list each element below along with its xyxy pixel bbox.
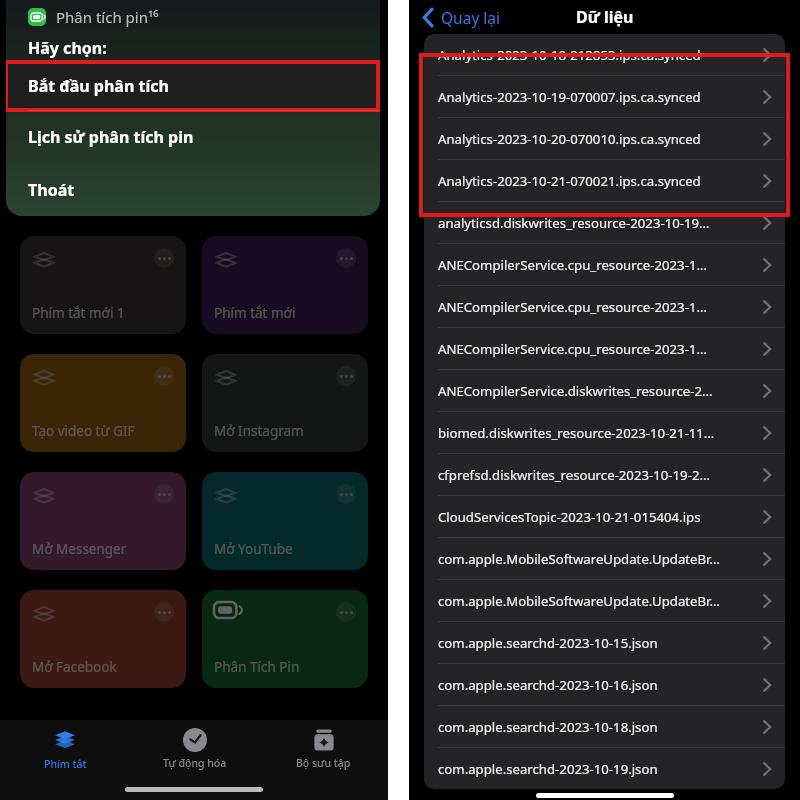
button[interactable]: Quay lại <box>423 7 501 28</box>
staticText: Mở Instagram <box>214 422 304 440</box>
staticText: com.apple.searchd-2023-10-16.json <box>438 676 658 694</box>
button[interactable]: com.apple.searchd-2023-10-16.json <box>424 663 785 705</box>
button[interactable]: More options <box>202 590 368 688</box>
staticText: ANECompilerService.diskwrites_resource-2… <box>438 382 713 400</box>
button[interactable]: Analytics-2023-10-20-070010.ips.ca.synce… <box>424 117 785 159</box>
button[interactable]: biomed.diskwrites_resource-2023-10-21-11… <box>424 411 785 453</box>
staticText: CloudServicesTopic-2023-10-21-015404.ips <box>438 508 701 526</box>
staticText: Phân Tích Pin <box>214 658 300 676</box>
button[interactable]: CloudServicesTopic-2023-10-21-015404.ips <box>424 495 785 537</box>
staticText: Bắt đầu phân tích <box>28 75 169 97</box>
staticText: analyticsd.diskwrites_resource-2023-10-1… <box>438 214 710 232</box>
button[interactable]: com.apple.searchd-2023-10-15.json <box>424 621 785 663</box>
staticText: Phân tích pin¹⁶ <box>56 7 159 27</box>
staticText: com.apple.MobileSoftwareUpdate.UpdateBr… <box>438 592 720 610</box>
staticText: Dữ liệu <box>576 6 634 28</box>
staticText: Mở YouTube <box>214 540 293 558</box>
button[interactable]: Thoát <box>6 163 380 216</box>
staticText: cfprefsd.diskwrites_resource-2023-10-19-… <box>438 466 710 484</box>
button[interactable]: Phân tích pin <box>20 158 186 216</box>
button[interactable]: More options <box>202 236 368 334</box>
staticText: ANECompilerService.cpu_resource-2023-1… <box>438 298 707 316</box>
button[interactable]: More options <box>336 602 356 622</box>
staticText: Analytics-2023-10-18-212853.ips.ca.synce… <box>438 46 701 64</box>
button[interactable]: More options <box>154 248 174 268</box>
button[interactable]: analyticsd.diskwrites_resource-2023-10-1… <box>424 201 785 243</box>
button[interactable]: More options <box>336 248 356 268</box>
button[interactable]: ANECompilerService.cpu_resource-2023-1… <box>424 285 785 327</box>
button[interactable]: Bắt đầu phân tích <box>6 62 378 110</box>
staticText: Tự động hóa <box>163 756 227 770</box>
staticText: com.apple.searchd-2023-10-19.json <box>438 760 658 778</box>
button[interactable]: Phím tắt <box>0 720 130 778</box>
staticText: Phím tắt <box>44 757 87 771</box>
staticText: com.apple.searchd-2023-10-18.json <box>438 718 658 736</box>
button[interactable]: More options <box>20 354 186 452</box>
staticText: ANECompilerService.cpu_resource-2023-1… <box>438 340 707 358</box>
button[interactable]: More options <box>154 366 174 386</box>
staticText: Analytics-2023-10-21-070021.ips.ca.synce… <box>438 172 701 190</box>
staticText: com.apple.searchd-2023-10-15.json <box>438 634 658 652</box>
button[interactable]: More options <box>154 602 174 622</box>
button[interactable]: More options <box>20 590 186 688</box>
button[interactable]: More options <box>154 484 174 504</box>
staticText: Hãy chọn: <box>28 37 107 59</box>
button[interactable]: Bộ sưu tập <box>259 720 388 778</box>
button[interactable]: ANECompilerService.cpu_resource-2023-1… <box>424 243 785 285</box>
button[interactable]: com.apple.MobileSoftwareUpdate.UpdateBr… <box>424 579 785 621</box>
staticText: Bộ sưu tập <box>296 756 351 770</box>
button[interactable]: More options <box>202 354 368 452</box>
button[interactable]: Analytics-2023-10-19-070007.ips.ca.synce… <box>424 75 785 117</box>
button[interactable]: Tự động hóa <box>130 720 259 778</box>
button[interactable]: Lịch sử phân tích pin <box>6 110 380 163</box>
button[interactable]: com.apple.searchd-2023-10-19.json <box>424 747 785 789</box>
button[interactable]: - HLC <box>202 158 368 216</box>
staticText: Thoát <box>28 179 75 201</box>
staticText: Tạo video từ GIF <box>32 422 135 440</box>
staticText: Lịch sử phân tích pin <box>28 126 194 148</box>
button[interactable]: More options <box>336 366 356 386</box>
staticText: Mở Facebook <box>32 658 117 676</box>
button[interactable]: Analytics-2023-10-21-070021.ips.ca.synce… <box>424 159 785 201</box>
staticText: ANECompilerService.cpu_resource-2023-1… <box>438 256 707 274</box>
button[interactable]: More options <box>336 484 356 504</box>
staticText: Phím tắt mới 1 <box>32 304 125 322</box>
button[interactable]: More options <box>20 472 186 570</box>
staticText: Phím tắt mới <box>214 304 296 322</box>
button[interactable]: com.apple.MobileSoftwareUpdate.UpdateBr… <box>424 537 785 579</box>
button[interactable]: Analytics-2023-10-18-212853.ips.ca.synce… <box>424 34 785 75</box>
button[interactable]: ANECompilerService.diskwrites_resource-2… <box>424 369 785 411</box>
button[interactable]: More options <box>20 236 186 334</box>
button[interactable]: ANECompilerService.cpu_resource-2023-1… <box>424 327 785 369</box>
staticText: com.apple.MobileSoftwareUpdate.UpdateBr… <box>438 550 720 568</box>
staticText: Mở Messenger <box>32 540 127 558</box>
staticText: Phân tích pin <box>32 170 115 188</box>
button[interactable]: More options <box>202 472 368 570</box>
staticText: Quay lại <box>441 7 501 28</box>
button[interactable]: com.apple.searchd-2023-10-18.json <box>424 705 785 747</box>
staticText: biomed.diskwrites_resource-2023-10-21-11… <box>438 424 715 442</box>
staticText: Analytics-2023-10-19-070007.ips.ca.synce… <box>438 88 701 106</box>
button[interactable]: cfprefsd.diskwrites_resource-2023-10-19-… <box>424 453 785 495</box>
staticText: Analytics-2023-10-20-070010.ips.ca.synce… <box>438 130 701 148</box>
